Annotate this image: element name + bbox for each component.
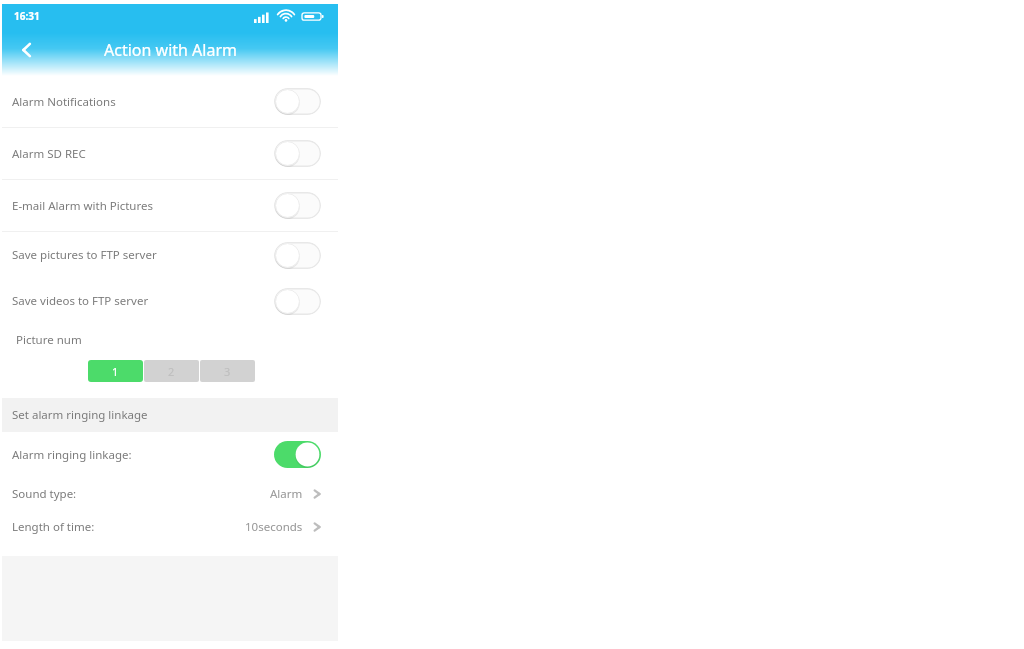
staticText: Save videos to FTP server (12, 293, 274, 309)
staticText: Length of time: (12, 519, 245, 535)
staticText: Sound type: (12, 486, 270, 502)
staticText: 1 (112, 364, 119, 379)
staticText: 2 (168, 364, 175, 379)
button[interactable]: Save videos to FTP server (2, 278, 338, 324)
staticText: Alarm Notifications (12, 94, 274, 110)
button[interactable]: Save videos to FTP server (274, 288, 321, 315)
staticText: Save pictures to FTP server (12, 247, 274, 263)
staticText: 10seconds (245, 519, 303, 535)
button[interactable]: Alarm Notifications (274, 88, 321, 115)
staticText: Alarm (270, 486, 303, 502)
button[interactable]: E-mail Alarm with Pictures (2, 180, 338, 231)
button[interactable]: Alarm Notifications (2, 76, 338, 127)
button[interactable]: 1 (88, 360, 143, 382)
button[interactable]: Alarm ringing linkage: (274, 441, 321, 468)
button[interactable]: Length of time: (2, 510, 338, 543)
staticText: Action with Alarm (104, 39, 237, 61)
button[interactable]: Alarm SD REC (2, 128, 338, 179)
button[interactable]: Save pictures to FTP server (274, 242, 321, 269)
staticText: 16:31 (14, 9, 40, 23)
staticText: 3 (224, 364, 231, 379)
staticText: Picture num (16, 332, 82, 348)
button[interactable]: Back (10, 33, 44, 67)
button[interactable]: Alarm SD REC (274, 140, 321, 167)
staticText: Alarm ringing linkage: (12, 447, 274, 463)
button[interactable]: Save pictures to FTP server (2, 232, 338, 278)
staticText: Set alarm ringing linkage (12, 407, 148, 423)
button[interactable]: Sound type: (2, 477, 338, 510)
button[interactable]: Alarm ringing linkage: (2, 432, 338, 477)
staticText: E-mail Alarm with Pictures (12, 198, 274, 214)
button[interactable]: E-mail Alarm with Pictures (274, 192, 321, 219)
staticText: Alarm SD REC (12, 146, 274, 162)
